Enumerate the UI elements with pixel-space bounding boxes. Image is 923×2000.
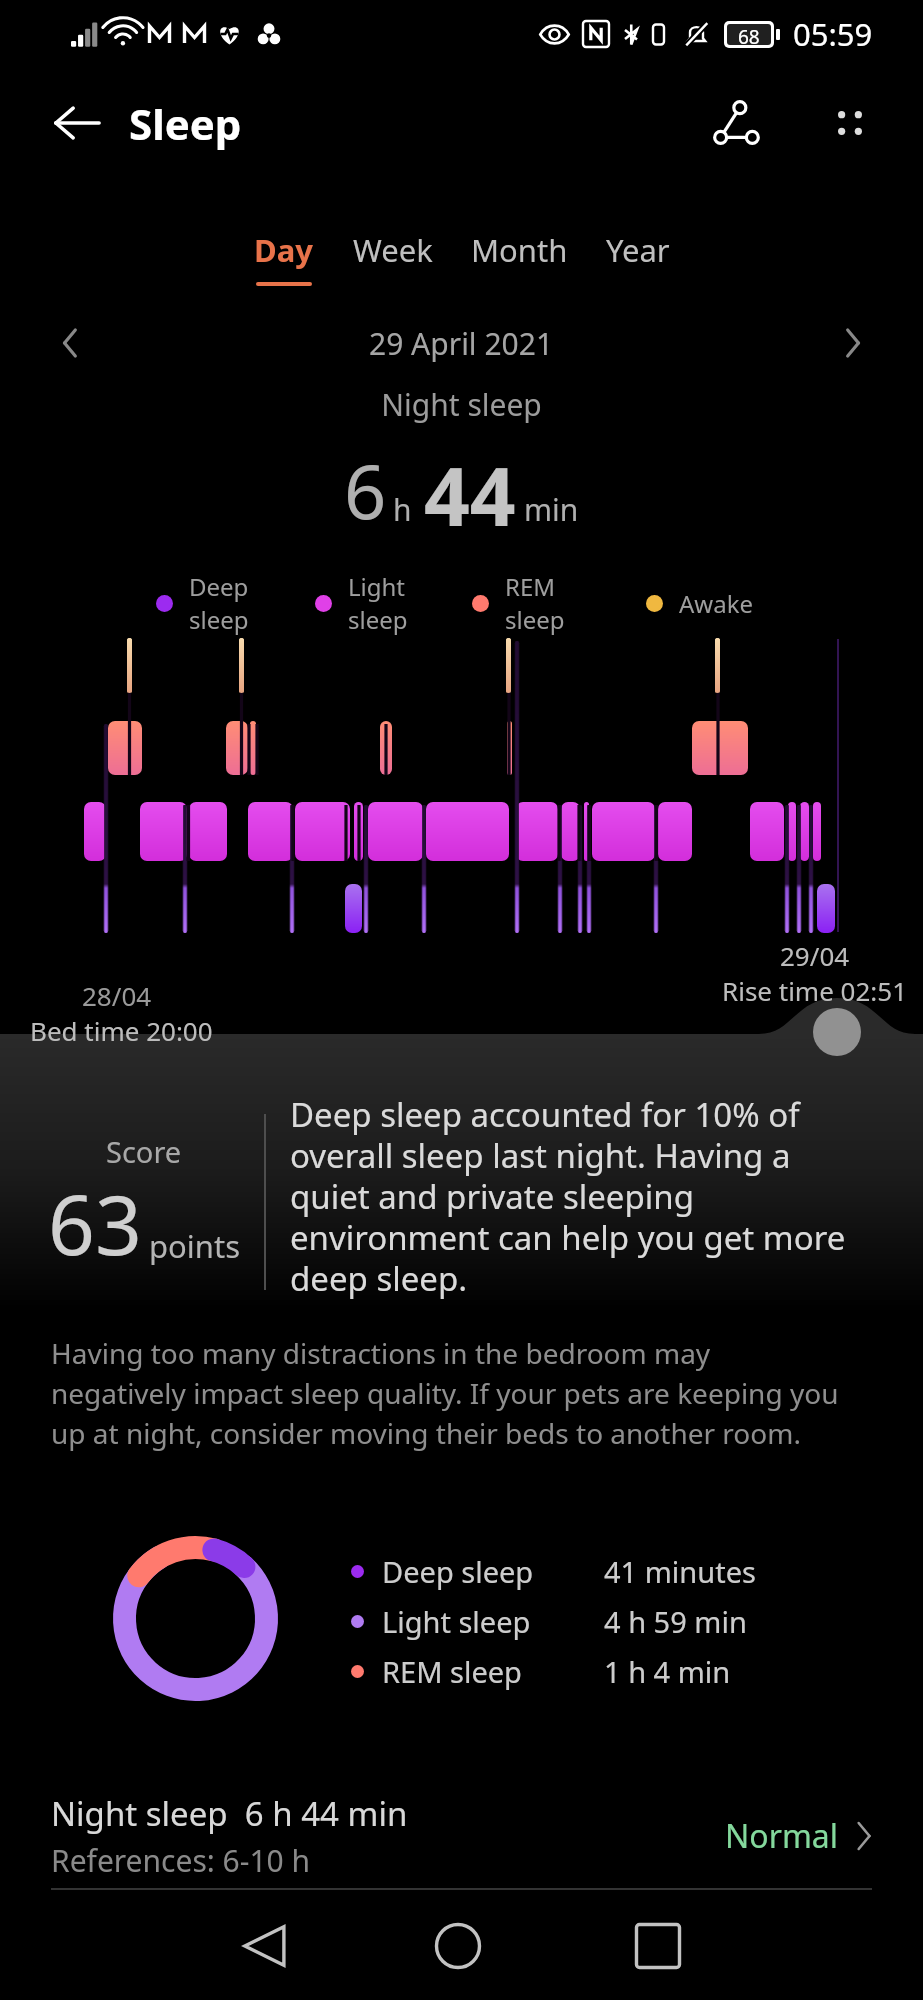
- button[interactable]: Next day: [825, 316, 879, 370]
- button[interactable]: Recent apps: [604, 1902, 712, 1990]
- staticText: Bed time 20:00: [30, 1013, 213, 1048]
- staticText: min: [524, 489, 579, 530]
- staticText: 63: [48, 1167, 142, 1279]
- staticText: sleep: [505, 603, 565, 636]
- staticText: Deep sleep accounted for 10% of overall …: [290, 1092, 890, 1301]
- staticText: 1 h 4 min: [604, 1652, 731, 1691]
- staticText: Normal: [725, 1814, 839, 1858]
- staticText: Light sleep: [382, 1602, 531, 1641]
- staticText: 29 April 2021: [369, 323, 554, 364]
- button[interactable]: Previous day: [44, 316, 98, 370]
- button[interactable]: Back: [44, 90, 110, 156]
- staticText: Awake: [679, 587, 754, 620]
- staticText: 29/04: [780, 938, 850, 973]
- staticText: sleep: [189, 603, 249, 636]
- button[interactable]: Week: [344, 229, 442, 286]
- staticText: REM: [505, 570, 556, 603]
- staticText: Month: [471, 229, 568, 271]
- staticText: points: [149, 1225, 241, 1267]
- staticText: Deep: [189, 570, 249, 603]
- staticText: h: [393, 489, 412, 530]
- button[interactable]: Year: [597, 229, 679, 286]
- staticText: 6: [344, 440, 387, 540]
- staticText: 05:59: [793, 13, 873, 55]
- staticText: 28/04: [82, 978, 152, 1013]
- button[interactable]: Month: [462, 229, 577, 286]
- button[interactable]: Home: [404, 1902, 512, 1990]
- staticText: Deep sleep: [382, 1552, 534, 1591]
- staticText: Day: [254, 229, 313, 271]
- staticText: References: 6-10 h: [51, 1840, 311, 1881]
- staticText: 41 minutes: [604, 1552, 756, 1591]
- button[interactable]: Night sleep 6 h 44 min: [0, 1788, 923, 1884]
- staticText: Light: [348, 570, 406, 603]
- staticText: 4 h 59 min: [604, 1602, 747, 1641]
- staticText: Year: [606, 229, 670, 271]
- button[interactable]: Share: [701, 88, 771, 158]
- staticText: Night sleep 6 h 44 min: [51, 1791, 408, 1836]
- button[interactable]: More options: [815, 88, 885, 158]
- staticText: 68: [738, 24, 760, 45]
- staticText: sleep: [348, 603, 408, 636]
- staticText: REM sleep: [382, 1652, 522, 1691]
- staticText: Night sleep: [0, 384, 923, 425]
- staticText: Week: [353, 229, 433, 271]
- button[interactable]: Back: [211, 1902, 319, 1990]
- staticText: Sleep: [129, 95, 242, 152]
- staticText: Score: [106, 1132, 182, 1171]
- staticText: 44: [424, 440, 516, 540]
- staticText: Rise time 02:51: [722, 973, 908, 1008]
- staticText: Having too many distractions in the bedr…: [51, 1334, 911, 1453]
- button[interactable]: Day: [245, 229, 322, 286]
